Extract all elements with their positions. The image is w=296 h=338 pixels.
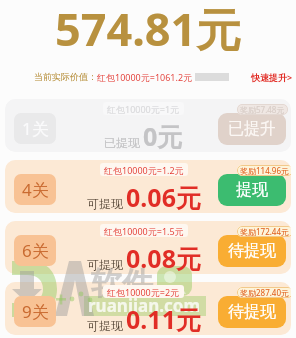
- button[interactable]: 待提现: [218, 235, 286, 267]
- staticText: 奖励57.48元: [240, 104, 285, 115]
- button[interactable]: 已提升: [218, 113, 286, 145]
- button[interactable]: 待提现: [218, 296, 286, 328]
- staticText: 可提现: [87, 196, 123, 211]
- staticText: 奖励172.44元: [240, 226, 290, 237]
- staticText: 当前实际价值：: [34, 71, 97, 82]
- staticText: 6关: [22, 239, 49, 262]
- staticText: 0.11元: [126, 302, 201, 335]
- staticText: 红包10000元=1061.2元: [97, 71, 193, 83]
- button[interactable]: 提现: [218, 174, 286, 206]
- button[interactable]: 9关: [5, 282, 291, 335]
- staticText: 待提现: [228, 241, 276, 261]
- staticText: ruanjian.com: [88, 294, 201, 317]
- staticText: 红包10000元=2元: [107, 286, 180, 298]
- staticText: 奖励287.40元: [240, 287, 290, 298]
- staticText: 快速提升>: [251, 71, 293, 83]
- staticText: 9关: [22, 300, 49, 323]
- staticText: 574.81元: [55, 0, 242, 59]
- staticText: 提现: [236, 180, 268, 200]
- staticText: 可提现: [87, 318, 123, 333]
- button[interactable]: 快速提升>: [251, 71, 293, 83]
- button[interactable]: 1关: [5, 99, 291, 152]
- staticText: 红包10000元=1.2元: [104, 164, 184, 176]
- staticText: 可提现: [87, 257, 123, 272]
- staticText: 1关: [22, 117, 49, 140]
- button[interactable]: 6关: [5, 221, 291, 274]
- staticText: 已提升: [228, 119, 276, 139]
- button[interactable]: 4关: [5, 160, 291, 213]
- staticText: 已提现: [104, 135, 140, 150]
- staticText: 0.08元: [126, 241, 201, 274]
- staticText: 0元: [143, 119, 183, 152]
- staticText: 红包10000元=1.5元: [104, 225, 184, 237]
- staticText: 软件: [91, 264, 153, 303]
- staticText: 待提现: [228, 302, 276, 322]
- staticText: 0.06元: [126, 180, 201, 213]
- staticText: 奖励114.96元: [240, 165, 290, 176]
- staticText: 4关: [22, 178, 49, 201]
- staticText: 红包10000元=1元: [107, 103, 180, 115]
